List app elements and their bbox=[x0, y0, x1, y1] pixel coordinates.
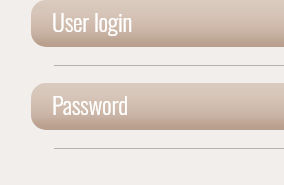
staticText: Password bbox=[52, 86, 128, 122]
button[interactable]: Password bbox=[31, 83, 284, 130]
staticText: User login bbox=[52, 3, 133, 39]
button[interactable]: User login bbox=[31, 0, 284, 47]
